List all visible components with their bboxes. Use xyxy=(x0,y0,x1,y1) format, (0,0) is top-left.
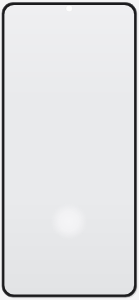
button[interactable]: Smartphone front view xyxy=(0,0,139,300)
